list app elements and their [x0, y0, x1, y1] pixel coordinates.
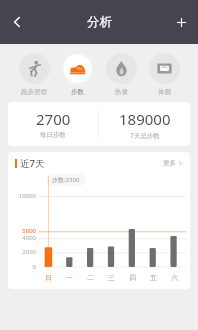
staticText: 二 — [87, 273, 94, 282]
staticText: 热量 — [115, 88, 128, 96]
staticText: 体圍 — [158, 88, 171, 96]
button[interactable]: Back — [0, 5, 34, 39]
staticText: 五 — [150, 273, 157, 282]
button[interactable]: 热量 — [101, 53, 141, 96]
staticText: 分析 — [87, 14, 112, 30]
staticText: 更多 — [163, 159, 176, 167]
button[interactable]: 体圍 — [144, 53, 184, 96]
button[interactable]: 步数 — [57, 53, 97, 96]
button[interactable]: Add — [164, 5, 198, 39]
staticText: 0 — [32, 263, 36, 271]
button[interactable]: 189000 — [99, 102, 190, 146]
staticText: 六 — [171, 273, 178, 282]
staticText: 7天总步数 — [130, 131, 160, 140]
staticText: 步数:2300 — [52, 176, 80, 184]
button[interactable]: 更多 — [163, 159, 183, 167]
staticText: 步数 — [71, 88, 84, 96]
staticText: 5000 — [22, 227, 36, 235]
staticText: 日 — [45, 273, 52, 282]
staticText: 近7天 — [20, 157, 45, 170]
staticText: 四 — [129, 273, 136, 282]
staticText: 每日步数 — [40, 131, 66, 139]
staticText: 2000 — [22, 248, 36, 256]
staticText: 10000 — [18, 192, 36, 200]
button[interactable]: 跑步里程 — [14, 53, 54, 96]
staticText: 4000 — [22, 234, 36, 242]
staticText: 一 — [66, 273, 73, 282]
staticText: 189000 — [119, 109, 171, 129]
staticText: 2700 — [36, 109, 71, 129]
button[interactable]: 2700 — [8, 102, 98, 146]
staticText: 三 — [108, 273, 115, 282]
staticText: 跑步里程 — [21, 88, 47, 96]
